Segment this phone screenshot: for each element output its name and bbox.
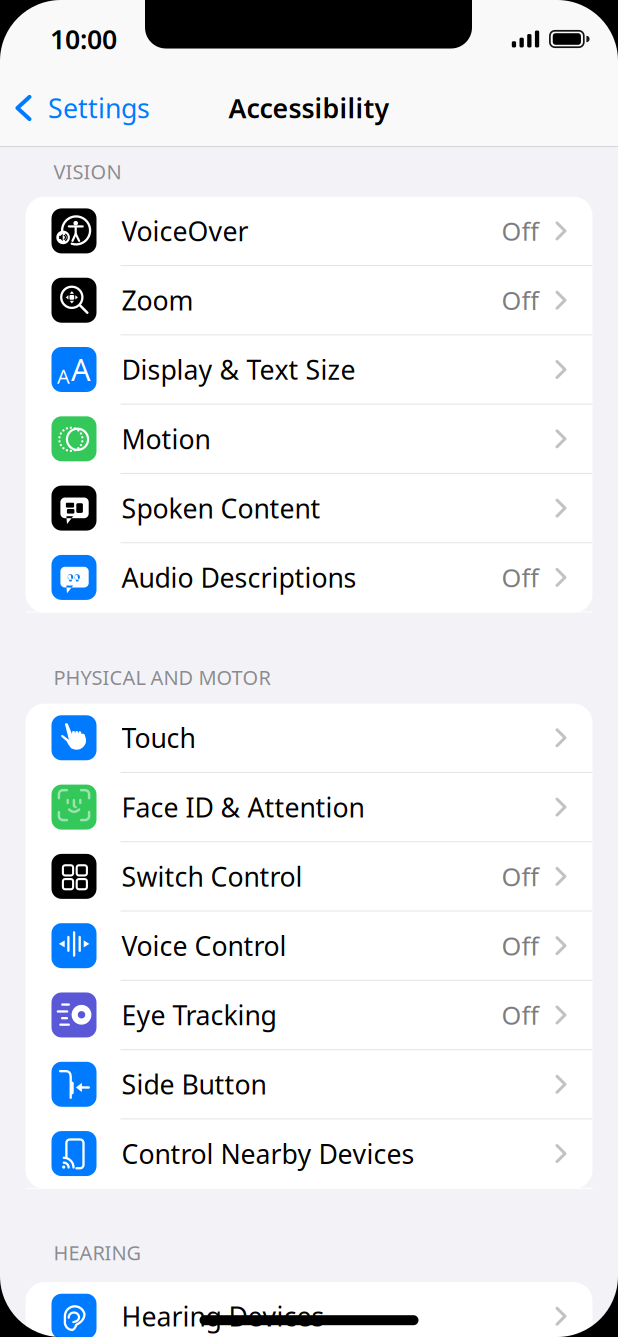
button[interactable]: Hearing Devices: [25, 1282, 592, 1337]
button[interactable]: Touch: [25, 704, 592, 773]
staticText: Off: [501, 998, 538, 1032]
button[interactable]: Side Button: [25, 1050, 592, 1119]
staticText: Face ID & Attention: [121, 789, 364, 825]
staticText: HEARING: [53, 1239, 141, 1266]
button[interactable]: Audio Descriptions: [25, 543, 592, 613]
staticText: VoiceOver: [121, 213, 248, 249]
staticText: Display & Text Size: [121, 352, 355, 387]
staticText: Accessibility: [228, 90, 389, 126]
staticText: Side Button: [121, 1067, 266, 1102]
staticText: Off: [501, 929, 538, 962]
staticText: 10:00: [50, 21, 117, 57]
staticText: Off: [501, 214, 538, 248]
staticText: Hearing Devices: [121, 1298, 324, 1334]
button[interactable]: Switch Control: [25, 842, 592, 911]
staticText: A: [71, 349, 91, 389]
staticText: Off: [501, 283, 538, 317]
staticText: A: [57, 363, 70, 389]
button[interactable]: VoiceOver: [25, 197, 592, 266]
staticText: Touch: [121, 720, 195, 755]
staticText: Eye Tracking: [121, 997, 276, 1033]
button[interactable]: Settings: [0, 88, 162, 136]
staticText: PHYSICAL AND MOTOR: [53, 664, 270, 691]
button[interactable]: Zoom: [25, 266, 592, 335]
button[interactable]: A: [25, 335, 592, 405]
staticText: Spoken Content: [121, 490, 320, 526]
staticText: Zoom: [121, 282, 193, 318]
staticText: Voice Control: [121, 928, 286, 963]
staticText: Switch Control: [121, 859, 302, 894]
button[interactable]: Motion: [25, 405, 592, 474]
button[interactable]: Spoken Content: [25, 474, 592, 543]
staticText: Audio Descriptions: [121, 560, 356, 595]
staticText: Control Nearby Devices: [121, 1136, 414, 1171]
staticText: Off: [501, 561, 538, 594]
staticText: VISION: [53, 158, 121, 185]
button[interactable]: Eye Tracking: [25, 981, 592, 1050]
button[interactable]: Control Nearby Devices: [25, 1119, 592, 1189]
staticText: Settings: [48, 90, 150, 126]
staticText: Off: [501, 859, 538, 893]
staticText: Motion: [121, 421, 210, 456]
button[interactable]: Face ID & Attention: [25, 773, 592, 842]
button[interactable]: Voice Control: [25, 911, 592, 981]
